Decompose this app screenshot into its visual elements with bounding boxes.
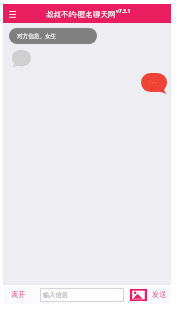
staticText: 叔叔不约·匿名聊天网 (46, 9, 116, 19)
button[interactable]: 发送 (152, 290, 171, 299)
button[interactable]: Menu (3, 5, 21, 23)
staticText: v7.3.1 (116, 8, 131, 15)
staticText: 输入信息 (43, 291, 68, 299)
staticText: 离开 (11, 290, 26, 299)
staticText: 发送 (152, 290, 167, 299)
button[interactable]: 输入信息 (40, 288, 124, 302)
button[interactable]: Send image (130, 289, 147, 301)
staticText: 对方信息、女生 (17, 33, 57, 40)
button[interactable]: 离开 (3, 290, 40, 299)
button[interactable]: 对方信息、女生 (9, 28, 97, 44)
